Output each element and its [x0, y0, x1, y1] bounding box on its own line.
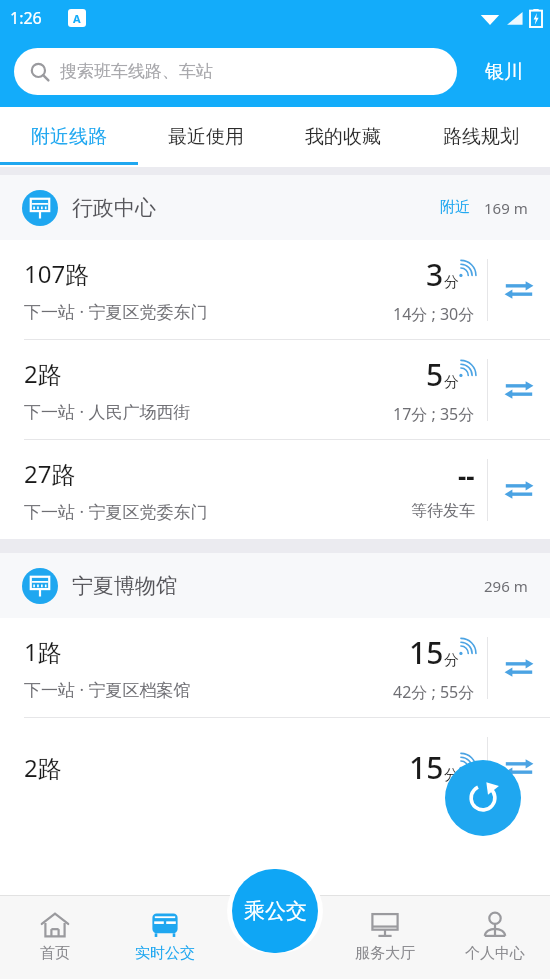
staticText: 首页	[40, 944, 70, 963]
staticText: 搜索班车线路、车站	[60, 61, 213, 82]
button[interactable]: 银川	[457, 60, 550, 84]
staticText: 附近	[440, 198, 470, 217]
staticText: 107路	[24, 257, 90, 290]
staticText: 分	[444, 273, 459, 292]
staticText: 169 m	[484, 198, 528, 218]
staticText: 下一站 · 人民广场西街	[24, 400, 191, 423]
button[interactable]: Switch direction	[488, 240, 550, 339]
staticText: 个人中心	[465, 944, 525, 963]
staticText: 2路	[24, 751, 62, 784]
button[interactable]: 乘公交	[232, 869, 318, 953]
button[interactable]: Switch direction	[488, 440, 550, 539]
staticText: 附近线路	[31, 125, 107, 149]
staticText: 2路	[24, 357, 62, 390]
staticText: 下一站 · 宁夏区党委东门	[24, 500, 208, 523]
staticText: 下一站 · 宁夏区党委东门	[24, 300, 208, 323]
button[interactable]: 27路	[0, 440, 550, 539]
staticText: 296 m	[484, 576, 528, 596]
staticText: 17分 ; 35分	[393, 403, 475, 425]
staticText: 宁夏博物馆	[72, 573, 177, 599]
staticText: 27路	[24, 457, 76, 490]
button[interactable]: Switch direction	[488, 618, 550, 717]
button[interactable]: 路线规划	[412, 107, 550, 167]
button[interactable]: 最近使用	[137, 107, 274, 167]
staticText: 3	[426, 254, 444, 295]
staticText: 银川	[485, 60, 523, 84]
button[interactable]: 宁夏博物馆	[0, 553, 550, 618]
staticText: 服务大厅	[355, 944, 415, 963]
staticText: 5	[426, 354, 444, 395]
staticText: 15	[409, 632, 444, 673]
staticText: 路线规划	[443, 125, 519, 149]
button[interactable]: 附近线路	[0, 107, 137, 167]
button[interactable]: Switch direction	[488, 340, 550, 439]
button[interactable]: 行政中心	[0, 175, 550, 240]
staticText: 1:26	[10, 7, 42, 29]
staticText: 最近使用	[168, 125, 244, 149]
staticText: 分	[444, 651, 459, 670]
staticText: 我的收藏	[305, 125, 381, 149]
button[interactable]: 107路	[0, 240, 550, 339]
staticText: --	[458, 458, 475, 493]
staticText: 下一站 · 宁夏区档案馆	[24, 678, 191, 701]
staticText: 1路	[24, 635, 62, 668]
staticText: 分	[444, 766, 459, 785]
staticText: 实时公交	[135, 944, 195, 963]
staticText: 行政中心	[72, 195, 156, 221]
staticText: 14分 ; 30分	[393, 303, 475, 325]
button[interactable]: 搜索班车线路、车站	[14, 48, 457, 95]
button[interactable]: 实时公交	[110, 895, 220, 979]
button[interactable]: 首页	[0, 895, 110, 979]
staticText: 等待发车	[411, 501, 475, 521]
button[interactable]: 个人中心	[440, 895, 550, 979]
button[interactable]: 1路	[0, 618, 550, 717]
staticText: 分	[444, 373, 459, 392]
staticText: 42分 ; 55分	[393, 681, 475, 703]
button[interactable]: Switch direction	[488, 718, 550, 817]
staticText: 15	[409, 747, 444, 788]
staticText: A	[73, 11, 81, 26]
button[interactable]: Refresh	[445, 760, 521, 836]
button[interactable]: 服务大厅	[330, 895, 440, 979]
button[interactable]: 2路	[0, 340, 550, 439]
staticText: 乘公交	[244, 898, 307, 924]
button[interactable]: 2路	[0, 718, 550, 817]
button[interactable]: 我的收藏	[274, 107, 412, 167]
